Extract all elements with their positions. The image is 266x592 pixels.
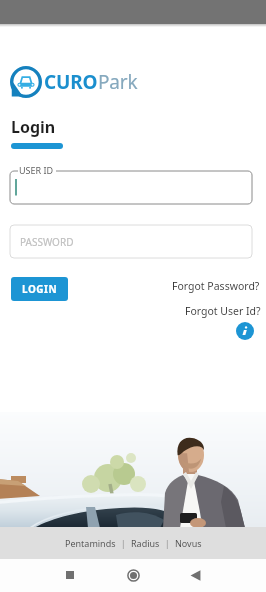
button[interactable]: Radius xyxy=(131,537,160,549)
button[interactable]: Forgot Password? xyxy=(172,279,260,293)
staticText: USER ID xyxy=(19,164,54,176)
staticText: LOGIN xyxy=(22,282,58,296)
button[interactable]: Forgot User Id? xyxy=(185,304,261,318)
button[interactable]: USER ID xyxy=(10,171,252,204)
button[interactable]: Pentaminds xyxy=(65,537,116,549)
button[interactable]: Information xyxy=(236,322,254,340)
button[interactable]: Back xyxy=(182,562,208,588)
staticText: Park xyxy=(98,69,138,95)
button[interactable]: Home xyxy=(120,562,146,588)
button[interactable]: Novus xyxy=(175,537,202,549)
button[interactable]: Recent apps xyxy=(57,562,83,588)
staticText: Login xyxy=(11,116,56,138)
staticText: PASSWORD xyxy=(20,235,74,249)
button[interactable]: LOGIN xyxy=(11,277,68,301)
staticText: | xyxy=(116,537,131,549)
button[interactable]: PASSWORD xyxy=(10,225,252,258)
staticText: | xyxy=(160,537,175,549)
staticText: CURO xyxy=(44,69,98,95)
